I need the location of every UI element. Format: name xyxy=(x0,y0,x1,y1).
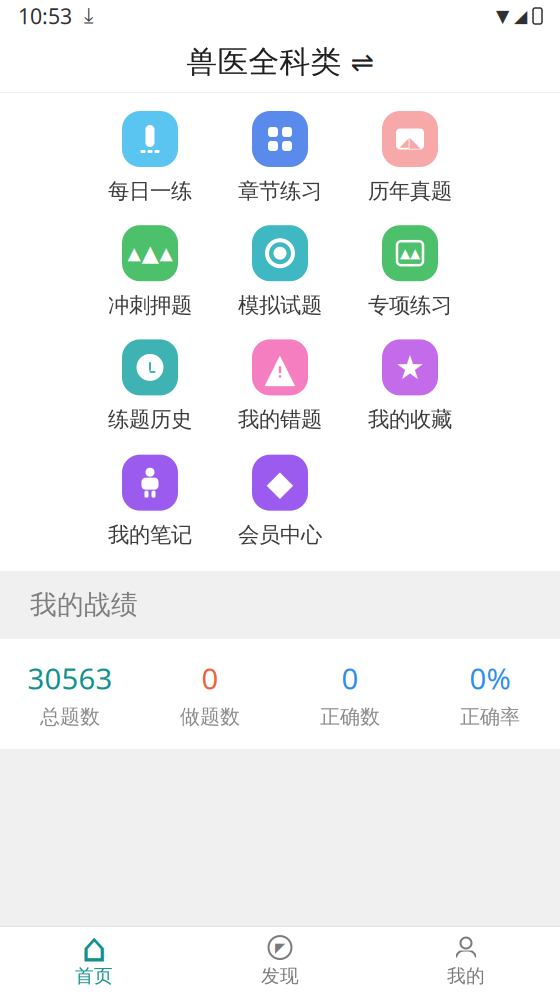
staticText: 0% xyxy=(469,659,510,698)
staticText: ▲ xyxy=(141,240,158,266)
staticText: 正确数 xyxy=(320,705,380,729)
button[interactable]: ★ xyxy=(345,337,475,435)
staticText: 我的收藏 xyxy=(368,406,452,433)
staticText: 我的笔记 xyxy=(108,522,192,548)
staticText: 每日一练 xyxy=(108,178,192,204)
staticText: 兽医全科类 xyxy=(186,43,341,81)
staticText: 30563 xyxy=(27,659,112,698)
staticText: ◢ xyxy=(514,6,527,26)
staticText: 章节练习 xyxy=(238,178,322,204)
staticText: ▲▲ xyxy=(400,246,420,261)
button[interactable]: ◢ xyxy=(345,109,475,206)
staticText: ▼ xyxy=(496,6,509,26)
staticText: 正确率 xyxy=(460,705,520,729)
staticText: ▲ xyxy=(159,243,172,263)
button[interactable]: 兽医全科类 xyxy=(0,32,560,92)
staticText: 我的错题 xyxy=(238,406,322,433)
staticText: ◤ xyxy=(275,940,285,955)
button[interactable]: 每日一练 xyxy=(85,109,215,206)
staticText: 0 xyxy=(201,659,218,698)
staticText: ▲ xyxy=(127,243,140,263)
staticText: ⇌ xyxy=(350,46,373,78)
staticText: 练题历史 xyxy=(108,406,192,433)
staticText: 会员中心 xyxy=(238,522,322,548)
staticText: 我的 xyxy=(447,964,485,987)
staticText: 模拟试题 xyxy=(238,292,322,318)
staticText: 0 xyxy=(341,659,358,698)
button[interactable]: ▲ xyxy=(215,337,345,435)
button[interactable]: ◆ xyxy=(215,453,345,550)
staticText: 发现 xyxy=(261,964,299,987)
staticText: 我的战绩 xyxy=(30,589,138,621)
staticText: 专项练习 xyxy=(368,292,452,318)
button[interactable]: 模拟试题 xyxy=(215,223,345,320)
staticText: ★ xyxy=(395,348,425,386)
button[interactable]: ⌂ xyxy=(1,930,187,992)
staticText: ◢ xyxy=(399,135,408,149)
staticText: 做题数 xyxy=(180,705,240,729)
staticText: 总题数 xyxy=(40,705,100,729)
staticText: ◆ xyxy=(266,463,293,502)
button[interactable]: ▲ xyxy=(85,223,215,320)
button[interactable]: 章节练习 xyxy=(215,109,345,206)
staticText: 冲刺押题 xyxy=(108,292,192,318)
staticText: ◣ xyxy=(409,134,420,150)
button[interactable]: 我的 xyxy=(373,930,559,992)
staticText: ▲ xyxy=(264,345,295,390)
button[interactable]: 练题历史 xyxy=(85,337,215,435)
staticText: ⌂ xyxy=(81,925,106,970)
button[interactable]: ◤ xyxy=(187,930,373,992)
staticText: 10:53 xyxy=(18,2,72,30)
staticText: ⤓ xyxy=(84,6,93,26)
staticText: 首页 xyxy=(75,964,113,987)
button[interactable]: ▲▲ xyxy=(345,223,475,320)
staticText: 历年真题 xyxy=(368,178,452,204)
button[interactable]: 我的笔记 xyxy=(85,453,215,550)
